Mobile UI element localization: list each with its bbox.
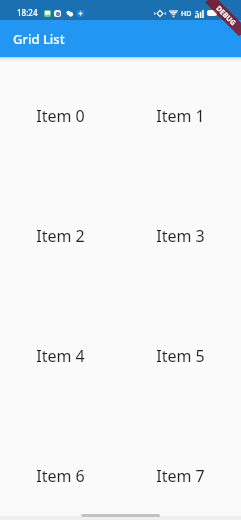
staticText: HD (181, 9, 192, 19)
button[interactable]: Item 2 (0, 176, 120, 296)
staticText: DEBUG (214, 4, 238, 28)
staticText: Item 0 (36, 105, 85, 127)
button[interactable]: Item 6 (0, 416, 120, 520)
button[interactable]: Item 7 (120, 416, 241, 520)
staticText: Item 2 (36, 225, 85, 247)
staticText: Item 4 (36, 345, 85, 367)
button[interactable]: Item 5 (120, 296, 241, 416)
staticText: Item 3 (156, 225, 205, 247)
staticText: Grid List (13, 30, 65, 48)
staticText: 18:24 (17, 7, 38, 18)
staticText: Item 7 (156, 465, 205, 487)
other: Location (154, 10, 166, 17)
button[interactable]: Item 3 (120, 176, 241, 296)
staticText: Item 5 (156, 345, 205, 367)
staticText: Item 6 (36, 465, 85, 487)
button[interactable]: Item 1 (120, 56, 241, 176)
button[interactable]: Item 0 (0, 56, 120, 176)
button[interactable]: Item 4 (0, 296, 120, 416)
staticText: Item 1 (156, 105, 205, 127)
